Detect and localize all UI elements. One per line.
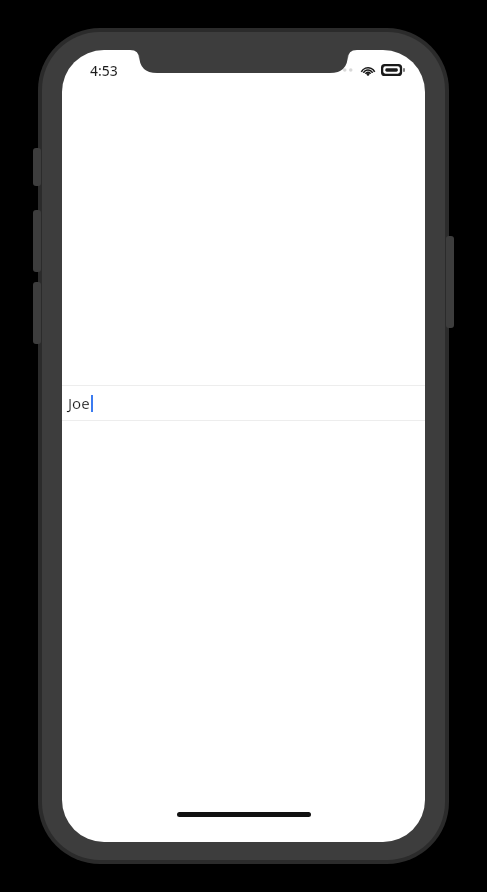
staticText: 4:53 (90, 61, 118, 80)
other: Silent switch (33, 148, 41, 186)
other: Volume down (33, 282, 41, 344)
button[interactable]: Joe (62, 385, 425, 421)
other: Volume up (33, 210, 41, 272)
other: Power (446, 236, 454, 328)
staticText: Joe (68, 393, 90, 413)
